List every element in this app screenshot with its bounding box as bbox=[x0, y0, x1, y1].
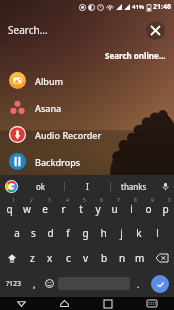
button[interactable]: b bbox=[95, 245, 113, 270]
button[interactable]: Search online... bbox=[105, 50, 166, 61]
staticText: u bbox=[111, 202, 118, 216]
button[interactable]: v bbox=[77, 245, 95, 270]
button[interactable]: thanks bbox=[111, 175, 156, 197]
button[interactable]: w bbox=[18, 197, 36, 221]
staticText: 1 bbox=[12, 197, 15, 204]
button[interactable]: Home bbox=[43, 297, 86, 310]
staticText: Search... bbox=[8, 23, 48, 37]
button[interactable]: Backspace bbox=[149, 245, 174, 270]
button[interactable]: , bbox=[27, 270, 41, 297]
staticText: p bbox=[162, 202, 169, 216]
staticText: Backdrops bbox=[35, 156, 81, 168]
staticText: j bbox=[120, 226, 123, 240]
button[interactable]: Asana bbox=[0, 94, 174, 121]
staticText: s bbox=[31, 226, 36, 240]
staticText: w bbox=[23, 202, 31, 216]
button[interactable]: m bbox=[131, 245, 149, 270]
button[interactable]: . bbox=[130, 270, 146, 297]
button[interactable]: q bbox=[0, 197, 18, 221]
button[interactable]: Audio Recorder bbox=[0, 121, 174, 148]
staticText: 8 bbox=[134, 197, 137, 204]
button[interactable]: k bbox=[130, 221, 148, 245]
button[interactable]: g bbox=[76, 221, 94, 245]
staticText: b bbox=[101, 251, 108, 265]
staticText: 9 bbox=[151, 197, 154, 204]
staticText: v bbox=[83, 251, 89, 265]
staticText: a bbox=[14, 226, 20, 240]
staticText: d bbox=[47, 226, 54, 240]
staticText: z bbox=[30, 251, 35, 265]
button[interactable]: Switch keyboard bbox=[130, 297, 174, 310]
button[interactable]: u bbox=[106, 197, 123, 221]
staticText: k bbox=[136, 226, 142, 240]
staticText: x bbox=[47, 251, 53, 265]
button[interactable]: f bbox=[59, 221, 76, 245]
button[interactable]: Back bbox=[0, 297, 43, 310]
button[interactable]: e bbox=[36, 197, 54, 221]
staticText: 21:46 bbox=[153, 2, 171, 12]
staticText: c bbox=[66, 251, 71, 265]
button[interactable]: p bbox=[157, 197, 174, 221]
button[interactable]: t bbox=[72, 197, 89, 221]
staticText: o bbox=[145, 202, 152, 216]
button[interactable]: Google bbox=[5, 180, 18, 193]
button[interactable]: n bbox=[113, 245, 131, 270]
button[interactable]: o bbox=[140, 197, 157, 221]
staticText: 5 bbox=[83, 197, 86, 204]
button[interactable]: i bbox=[123, 197, 140, 221]
staticText: q bbox=[6, 202, 13, 216]
staticText: , bbox=[33, 278, 36, 290]
staticText: 2 bbox=[30, 197, 33, 204]
staticText: I bbox=[86, 181, 89, 192]
button[interactable]: l bbox=[148, 221, 166, 245]
button[interactable]: z bbox=[24, 245, 41, 270]
staticText: 7 bbox=[117, 197, 120, 204]
button[interactable]: Emoji bbox=[41, 270, 58, 297]
button[interactable]: ?123 bbox=[0, 270, 27, 297]
staticText: thanks bbox=[121, 181, 147, 192]
button[interactable]: Voice input bbox=[156, 175, 174, 197]
button[interactable]: Enter bbox=[146, 270, 174, 297]
staticText: ?123 bbox=[6, 279, 22, 289]
button[interactable]: a bbox=[8, 221, 25, 245]
button[interactable]: Clear search bbox=[146, 21, 165, 40]
staticText: g bbox=[82, 226, 89, 240]
button[interactable]: d bbox=[42, 221, 59, 245]
staticText: y bbox=[95, 202, 101, 216]
staticText: Audio Recorder bbox=[35, 129, 102, 141]
button[interactable]: j bbox=[112, 221, 130, 245]
staticText: 4 bbox=[66, 197, 69, 204]
staticText: n bbox=[119, 251, 126, 265]
staticText: Asana bbox=[35, 102, 62, 114]
button[interactable]: Shift bbox=[0, 245, 24, 270]
staticText: m bbox=[135, 251, 145, 265]
button[interactable]: r bbox=[54, 197, 72, 221]
staticText: h bbox=[100, 226, 107, 240]
button[interactable]: I bbox=[65, 175, 110, 197]
staticText: 0 bbox=[168, 197, 171, 204]
button[interactable]: y bbox=[89, 197, 106, 221]
button[interactable]: ok bbox=[18, 175, 64, 197]
button[interactable]: Album bbox=[0, 67, 174, 94]
staticText: 3 bbox=[48, 197, 51, 204]
staticText: t bbox=[79, 202, 83, 216]
staticText: f bbox=[66, 226, 70, 240]
staticText: r bbox=[61, 202, 66, 216]
staticText: 6 bbox=[100, 197, 103, 204]
button[interactable]: h bbox=[94, 221, 112, 245]
staticText: ok bbox=[36, 181, 46, 192]
staticText: i bbox=[130, 202, 133, 216]
button[interactable]: Backdrops bbox=[0, 148, 174, 175]
button[interactable]: Recent apps bbox=[86, 297, 130, 310]
staticText: l bbox=[156, 226, 159, 240]
staticText: 41% bbox=[132, 3, 145, 11]
staticText: . bbox=[137, 278, 140, 290]
button[interactable]: c bbox=[59, 245, 77, 270]
staticText: e bbox=[42, 202, 48, 216]
button[interactable]: s bbox=[25, 221, 42, 245]
staticText: Album bbox=[35, 75, 64, 87]
button[interactable]: x bbox=[41, 245, 59, 270]
